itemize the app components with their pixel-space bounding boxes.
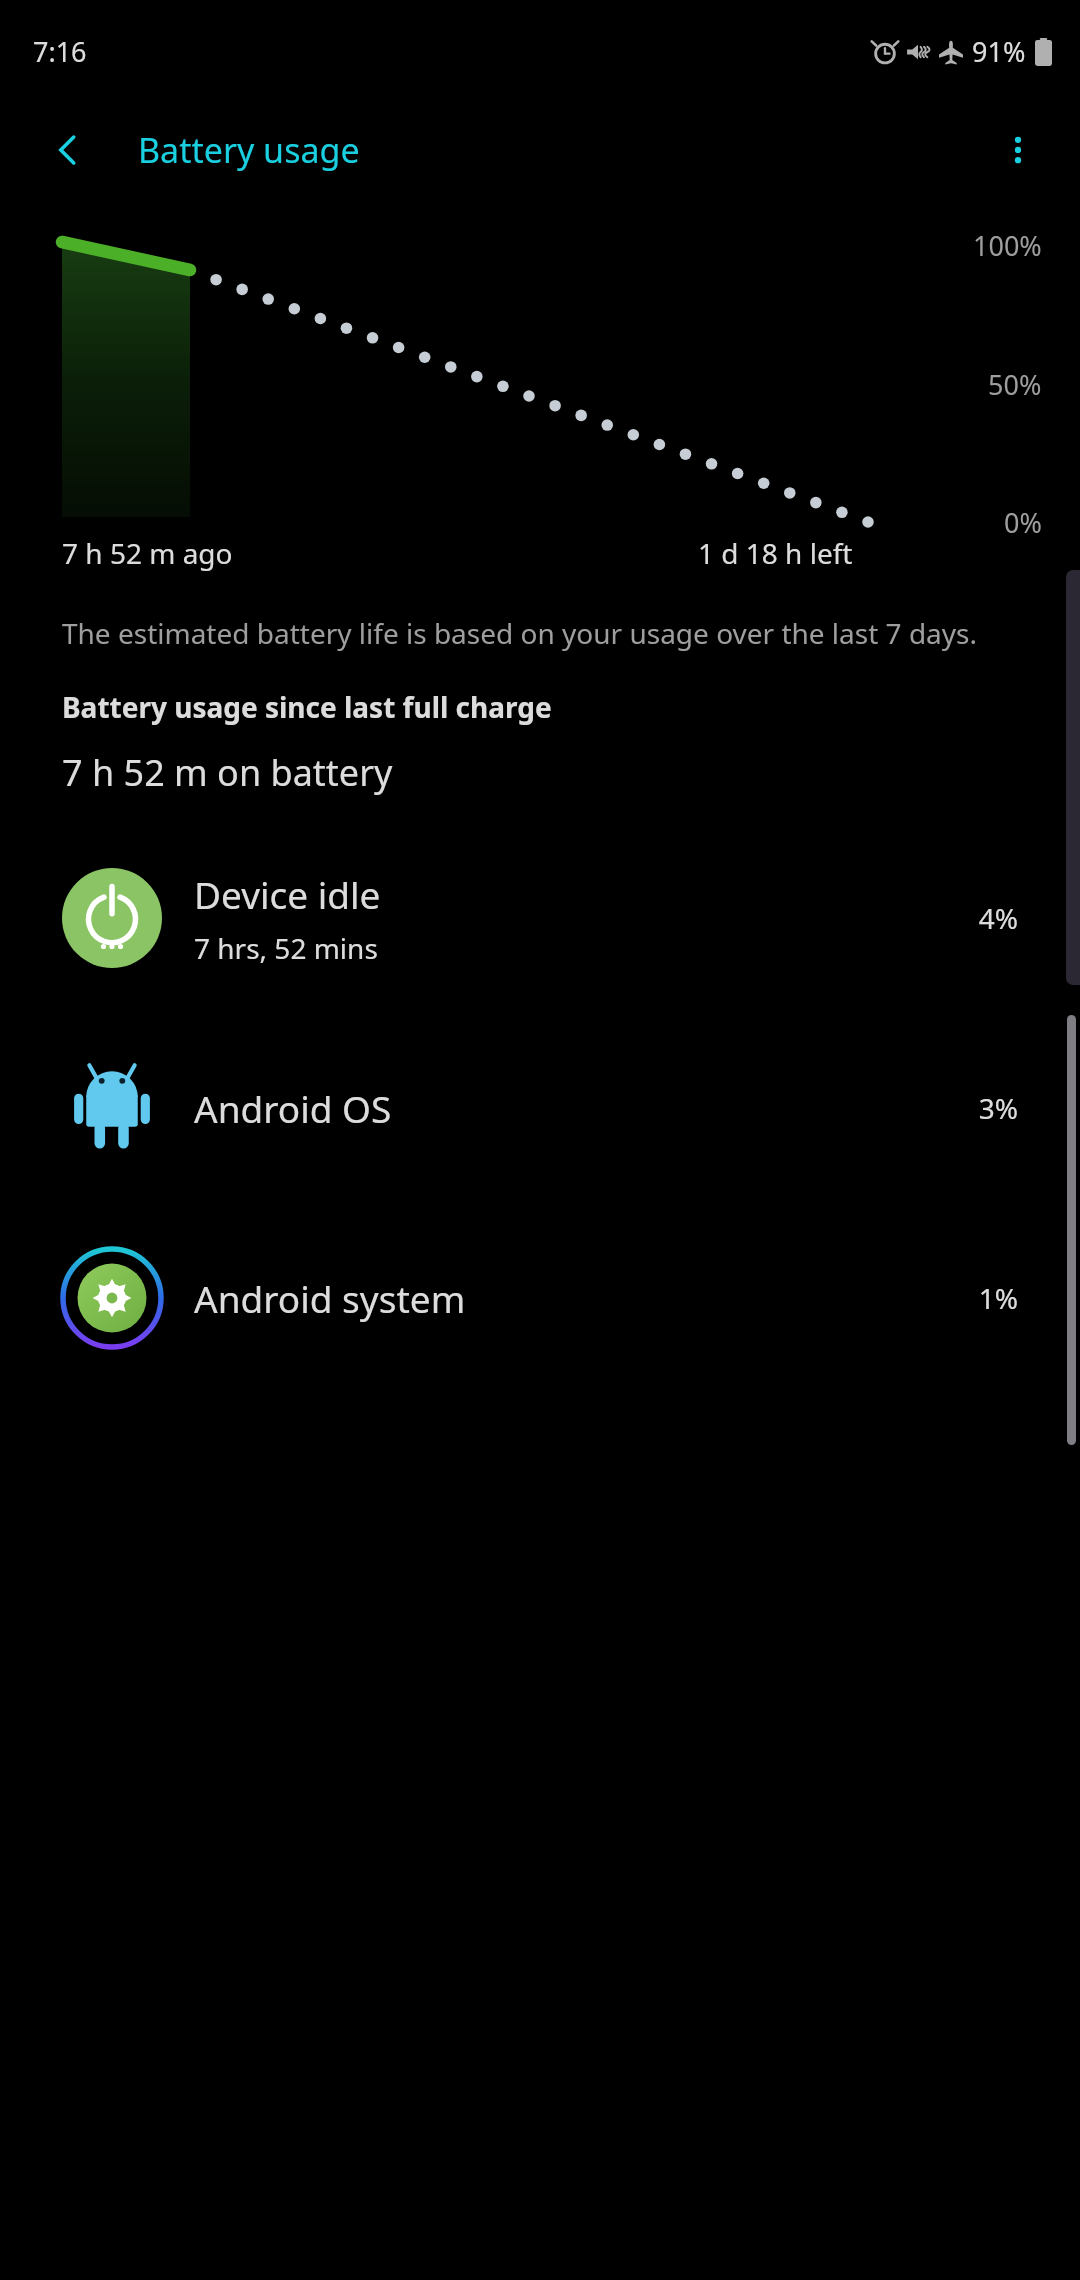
staticText: 1 d 18 h left bbox=[698, 534, 853, 572]
staticText: 7 h 52 m ago bbox=[62, 534, 233, 572]
staticText: The estimated battery life is based on y… bbox=[62, 614, 1010, 652]
staticText: Battery usage bbox=[138, 127, 360, 173]
button[interactable]: Device idle bbox=[0, 823, 1080, 1013]
staticText: Battery usage since last full charge bbox=[62, 688, 552, 726]
staticText: 4% bbox=[978, 899, 1018, 937]
staticText: 1% bbox=[978, 1279, 1018, 1317]
staticText: Android system bbox=[194, 1273, 466, 1323]
button[interactable]: Back bbox=[40, 122, 96, 178]
button[interactable]: Android system bbox=[0, 1203, 1080, 1393]
staticText: Device idle bbox=[194, 869, 381, 919]
button[interactable]: More options bbox=[982, 114, 1054, 186]
staticText: 50% bbox=[988, 366, 1042, 403]
staticText: 7 hrs, 52 mins bbox=[194, 929, 378, 967]
staticText: 7:16 bbox=[33, 33, 87, 70]
button[interactable]: Android OS bbox=[0, 1013, 1080, 1203]
staticText: 91% bbox=[972, 33, 1026, 70]
staticText: 3% bbox=[978, 1089, 1018, 1127]
staticText: Android OS bbox=[194, 1083, 392, 1133]
staticText: 100% bbox=[973, 227, 1042, 264]
staticText: 7 h 52 m on battery bbox=[62, 748, 393, 797]
staticText: 0% bbox=[1004, 504, 1042, 534]
